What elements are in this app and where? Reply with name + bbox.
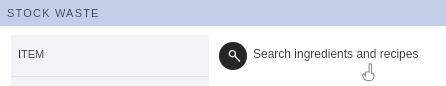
staticText: STOCK WASTE [7, 7, 100, 19]
button[interactable]: ITEM [11, 35, 209, 76]
button[interactable]: Search [209, 35, 446, 76]
other: Search [219, 42, 247, 70]
staticText: Search ingredients and recipes [253, 47, 419, 60]
staticText: ITEM [18, 48, 45, 60]
